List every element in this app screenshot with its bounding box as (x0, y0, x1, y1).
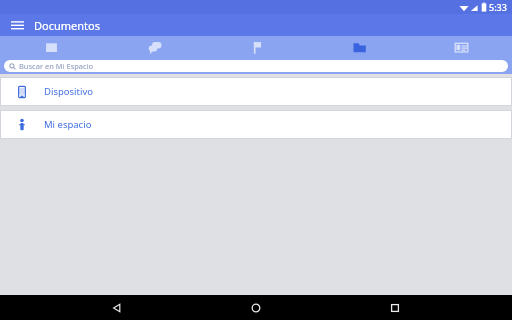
staticText: Documentos (34, 18, 100, 33)
staticText: Mi espacio (44, 118, 92, 131)
staticText: 5:33 (489, 1, 507, 13)
button[interactable]: Inbox (0, 36, 103, 58)
button[interactable]: Back (106, 297, 128, 319)
button[interactable]: Contacts (410, 36, 512, 58)
button[interactable]: Buscar en Mi Espacio (4, 60, 508, 72)
button[interactable]: Flagged (206, 36, 308, 58)
button[interactable]: Home (245, 297, 267, 319)
staticText: Dispositivo (44, 85, 93, 98)
button[interactable]: Recent apps (384, 297, 406, 319)
button[interactable]: Chats (103, 36, 206, 58)
button[interactable]: Dispositivo (0, 77, 512, 106)
staticText: Buscar en Mi Espacio (19, 61, 94, 71)
button[interactable]: Mi espacio (0, 110, 512, 139)
button[interactable]: Open navigation drawer (0, 14, 34, 36)
button[interactable]: Documents (308, 36, 410, 58)
